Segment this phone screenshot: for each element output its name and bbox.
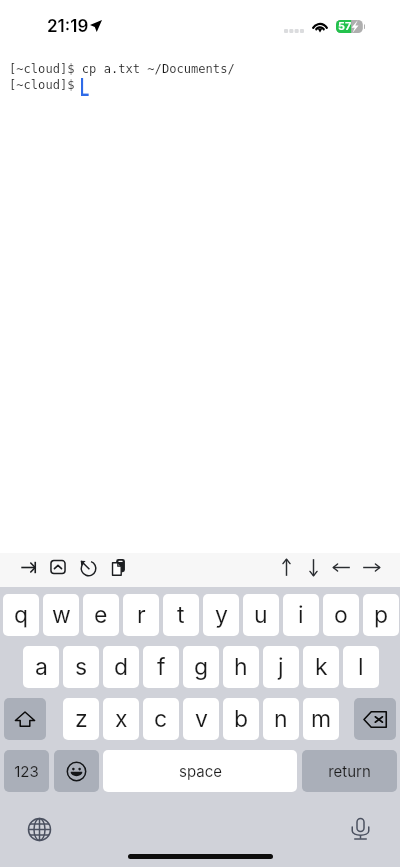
- staticText: 57: [338, 19, 352, 32]
- button[interactable]: f: [143, 646, 179, 688]
- staticText: p: [374, 601, 389, 629]
- button[interactable]: c: [143, 698, 179, 740]
- button[interactable]: m: [303, 698, 339, 740]
- staticText: n: [274, 705, 288, 733]
- button[interactable]: g: [183, 646, 219, 688]
- staticText: c: [154, 705, 168, 733]
- button[interactable]: u: [243, 594, 279, 636]
- button[interactable]: x: [103, 698, 139, 740]
- button[interactable]: Backspace: [354, 698, 396, 740]
- button[interactable]: return: [302, 750, 397, 792]
- staticText: r: [137, 601, 146, 629]
- button[interactable]: space: [103, 750, 297, 792]
- button[interactable]: Paste: [111, 553, 128, 581]
- staticText: y: [215, 601, 228, 629]
- button[interactable]: Emoji: [54, 750, 99, 792]
- staticText: j: [278, 653, 284, 681]
- staticText: x: [115, 705, 128, 733]
- button[interactable]: Arrow down: [304, 552, 322, 582]
- button[interactable]: y: [203, 594, 239, 636]
- staticText: g: [194, 653, 209, 681]
- button[interactable]: j: [263, 646, 299, 688]
- button[interactable]: Dictation: [348, 816, 373, 841]
- staticText: 123: [14, 762, 39, 780]
- staticText: l: [358, 653, 364, 681]
- button[interactable]: r: [123, 594, 159, 636]
- staticText: o: [334, 601, 348, 629]
- button[interactable]: b: [223, 698, 259, 740]
- button[interactable]: e: [83, 594, 119, 636]
- staticText: q: [14, 601, 29, 629]
- button[interactable]: o: [323, 594, 359, 636]
- button[interactable]: p: [363, 594, 399, 636]
- staticText: a: [35, 653, 48, 681]
- button[interactable]: k: [303, 646, 339, 688]
- staticText: return: [328, 762, 371, 780]
- button[interactable]: a: [23, 646, 59, 688]
- button[interactable]: s: [63, 646, 99, 688]
- button[interactable]: q: [3, 594, 39, 636]
- staticText: b: [234, 705, 249, 733]
- button[interactable]: Control: [50, 553, 66, 581]
- staticText: v: [195, 705, 208, 733]
- button[interactable]: Tab: [21, 553, 36, 581]
- staticText: s: [75, 653, 88, 681]
- button[interactable]: Arrow right: [362, 552, 380, 582]
- staticText: i: [298, 601, 304, 629]
- staticText: m: [311, 705, 332, 733]
- staticText: 21:19: [47, 16, 89, 37]
- button[interactable]: t: [163, 594, 199, 636]
- staticText: d: [114, 653, 129, 681]
- staticText: w: [52, 601, 71, 629]
- staticText: e: [94, 601, 108, 629]
- staticText: k: [315, 653, 328, 681]
- button[interactable]: z: [63, 698, 99, 740]
- button[interactable]: Arrow up: [277, 552, 295, 582]
- staticText: z: [75, 705, 88, 733]
- staticText: [~cloud]$: [9, 78, 75, 92]
- button[interactable]: n: [263, 698, 299, 740]
- button[interactable]: l: [343, 646, 379, 688]
- button[interactable]: h: [223, 646, 259, 688]
- staticText: h: [234, 653, 248, 681]
- button[interactable]: d: [103, 646, 139, 688]
- staticText: f: [157, 653, 166, 681]
- button[interactable]: Arrow left: [332, 552, 350, 582]
- staticText: t: [177, 601, 185, 629]
- button[interactable]: Change language: [27, 817, 52, 842]
- button[interactable]: v: [183, 698, 219, 740]
- button[interactable]: w: [43, 594, 79, 636]
- button[interactable]: Shift: [4, 698, 46, 740]
- staticText: [~cloud]$ cp a.txt ~/Documents/: [9, 62, 235, 76]
- button[interactable]: i: [283, 594, 319, 636]
- staticText: space: [179, 762, 222, 780]
- button[interactable]: History: [79, 553, 97, 581]
- button[interactable]: 123: [4, 750, 49, 792]
- staticText: u: [254, 601, 268, 629]
